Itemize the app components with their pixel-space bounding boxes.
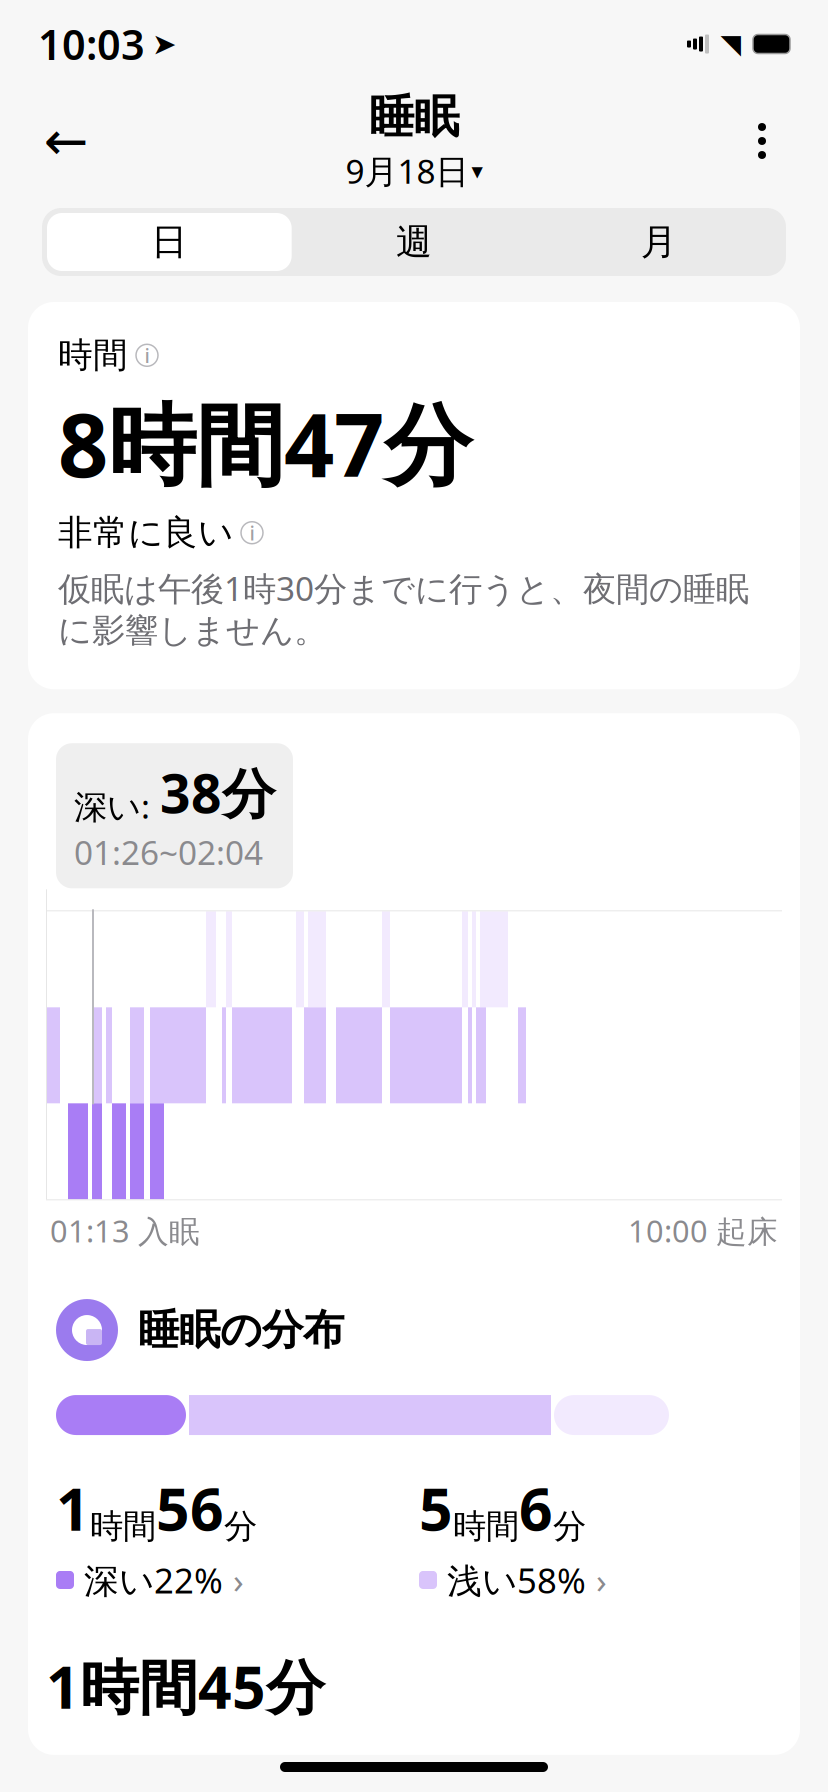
staticText: 深い22% (84, 1557, 223, 1603)
staticText: 分 (224, 1506, 257, 1547)
staticText: 分 (553, 1506, 586, 1547)
staticText: ← (43, 111, 88, 171)
staticText: 6 (519, 1469, 553, 1547)
staticText: 1 (56, 1469, 90, 1547)
button[interactable]: 5 (419, 1469, 782, 1603)
button[interactable]: Back (28, 103, 104, 179)
staticText: 01:26~02:04 (74, 830, 263, 874)
staticText: 時間 (90, 1506, 156, 1547)
staticText: 38分 (160, 757, 275, 828)
staticText: 睡眠の分布 (138, 1305, 344, 1355)
button[interactable]: 月 (536, 213, 781, 271)
staticText: 週 (396, 220, 432, 264)
staticText: 8時間47分 (58, 385, 472, 501)
staticText: 仮眠は午後1時30分までに行うと、夜間の睡眠に影響しません。 (58, 566, 749, 651)
staticText: 1時間45分 (46, 1647, 325, 1725)
staticText: 56 (156, 1469, 224, 1547)
staticText: ◥ (720, 29, 741, 59)
staticText: › (233, 1557, 244, 1603)
button[interactable]: 日 (47, 213, 292, 271)
staticText: 睡眠 (369, 89, 459, 145)
staticText: 月 (641, 220, 677, 264)
staticText: 非常に良い (58, 511, 233, 554)
staticText: i (144, 342, 149, 369)
staticText: 5 (419, 1469, 453, 1547)
button[interactable]: More options (724, 103, 800, 179)
staticText: i (249, 519, 254, 546)
staticText: 01:13 入眠 (50, 1210, 200, 1251)
staticText: ▾ (471, 158, 482, 184)
staticText: 時間 (453, 1506, 519, 1547)
staticText: 日 (151, 220, 187, 264)
staticText: 深い: (74, 784, 150, 828)
staticText: 浅い58% (447, 1557, 586, 1603)
staticText: 9月18日 (345, 149, 468, 193)
staticText: 10:00 起床 (628, 1210, 778, 1251)
staticText: ➤ (152, 27, 177, 61)
button[interactable]: 1 (56, 1469, 419, 1603)
button[interactable]: 9月18日 (345, 149, 482, 193)
staticText: 時間 (58, 334, 128, 377)
staticText: 10:03 (38, 17, 145, 71)
button[interactable]: 週 (292, 213, 536, 271)
staticText: › (596, 1557, 607, 1603)
